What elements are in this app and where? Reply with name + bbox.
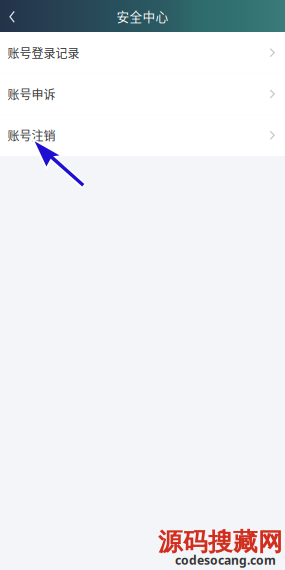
staticText: 账号注销	[7, 127, 55, 144]
button[interactable]: 账号申诉	[0, 73, 285, 115]
staticText: 安全中心	[116, 7, 168, 25]
button[interactable]: 账号注销	[0, 115, 285, 156]
staticText: 账号登录记录	[7, 44, 79, 61]
staticText: 账号申诉	[7, 85, 55, 103]
staticText: 源码搜藏网	[158, 526, 283, 557]
staticText: codesocang.com	[175, 552, 276, 568]
button[interactable]: 账号登录记录	[0, 32, 285, 73]
button[interactable]: Back	[0, 0, 26, 32]
